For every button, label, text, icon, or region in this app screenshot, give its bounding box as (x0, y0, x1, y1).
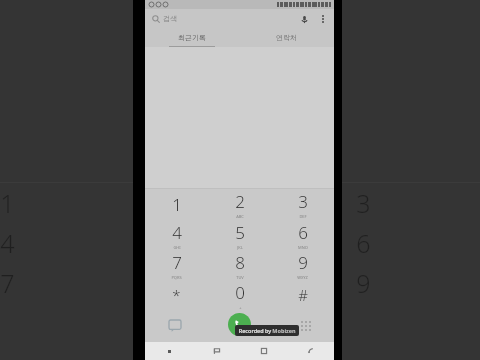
button[interactable]: Send message (165, 316, 185, 336)
button[interactable]: 8 (208, 250, 271, 280)
staticText: Recorded by (238, 327, 272, 334)
staticText: TUV (236, 275, 244, 280)
staticText: 4 (0, 226, 15, 260)
staticText: 2 (235, 190, 245, 213)
staticText: MNO (298, 245, 308, 250)
staticText: 9 (356, 266, 371, 300)
button[interactable]: 4 (145, 220, 208, 250)
button[interactable]: Voice search (298, 13, 310, 25)
staticText: 4 (172, 221, 182, 244)
staticText: 6 (298, 221, 308, 244)
button[interactable]: More options (317, 13, 329, 25)
staticText: 3 (356, 186, 371, 220)
staticText: 검색 (163, 14, 177, 23)
staticText: 0 (235, 281, 245, 304)
button[interactable]: # (271, 280, 334, 310)
staticText: 9 (298, 251, 308, 274)
staticText: JKL (237, 245, 243, 250)
staticText: 연락처 (276, 33, 297, 42)
staticText: GHI (173, 245, 181, 250)
button[interactable]: * (145, 280, 208, 310)
button[interactable]: Recent apps (193, 342, 240, 360)
button[interactable]: Keypad (296, 316, 316, 336)
staticText: PQRS (171, 275, 182, 280)
button[interactable]: 0 (208, 280, 271, 310)
button[interactable]: 5 (208, 220, 271, 250)
staticText: # (298, 285, 308, 305)
button[interactable]: 최근기록 (145, 28, 239, 47)
button[interactable]: 검색 (152, 14, 177, 23)
button[interactable]: Back (287, 342, 334, 360)
staticText: 1 (172, 193, 182, 216)
button[interactable]: 9 (271, 250, 334, 280)
staticText: DEF (299, 214, 307, 219)
staticText: 7 (172, 251, 182, 274)
staticText: 1 (0, 186, 15, 220)
staticText: 6 (356, 226, 371, 260)
button[interactable]: 2 (208, 189, 271, 220)
button[interactable]: Menu (145, 342, 193, 360)
staticText: 3 (298, 190, 308, 213)
staticText: 최근기록 (178, 33, 206, 42)
button[interactable]: 연락처 (239, 28, 334, 47)
staticText: * (172, 285, 181, 305)
staticText: WXYZ (297, 275, 308, 280)
button[interactable]: 1 (145, 189, 208, 220)
staticText: ABC (236, 214, 244, 219)
staticText: 5 (235, 221, 245, 244)
button[interactable]: 7 (145, 250, 208, 280)
staticText: 7 (0, 266, 15, 300)
staticText: Mobizen (272, 327, 296, 334)
button[interactable]: Home (240, 342, 287, 360)
button[interactable]: Call (228, 313, 251, 336)
button[interactable]: 3 (271, 189, 334, 220)
staticText: + (239, 305, 242, 310)
button[interactable]: 6 (271, 220, 334, 250)
staticText: 8 (235, 251, 245, 274)
